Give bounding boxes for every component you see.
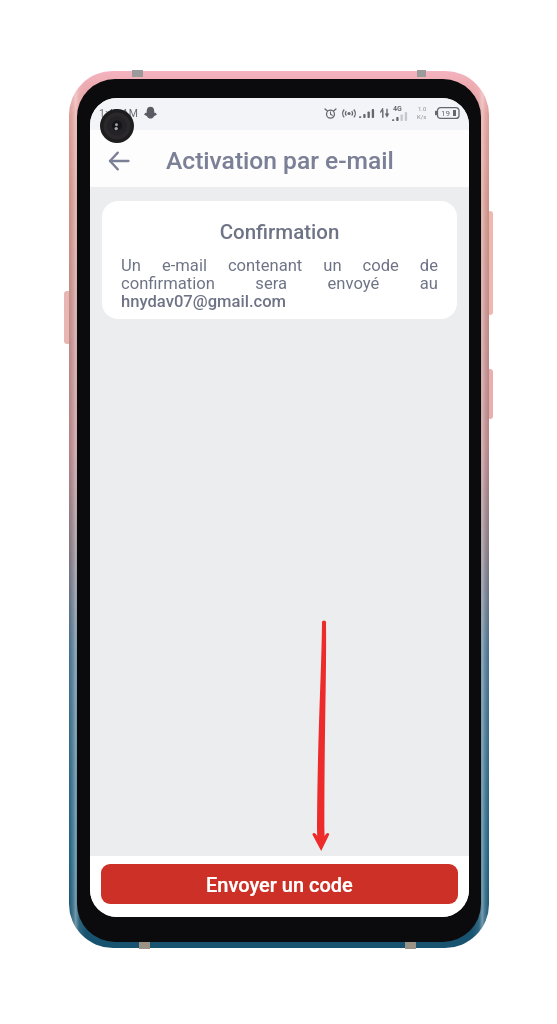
- staticText: Activation par e-mail: [166, 146, 394, 175]
- staticText: K/s: [417, 113, 427, 120]
- staticText: Un e-mail contenant un code de confirmat…: [121, 256, 438, 311]
- staticText: Confirmation: [121, 220, 438, 244]
- button[interactable]: Back: [96, 136, 142, 182]
- staticText: 19: [441, 109, 450, 118]
- staticText: 1:43 AM: [99, 107, 138, 119]
- staticText: 1.0: [418, 105, 427, 112]
- staticText: 4G: [393, 105, 402, 113]
- staticText: Envoyer un code: [206, 873, 353, 896]
- button[interactable]: Envoyer un code: [101, 864, 458, 904]
